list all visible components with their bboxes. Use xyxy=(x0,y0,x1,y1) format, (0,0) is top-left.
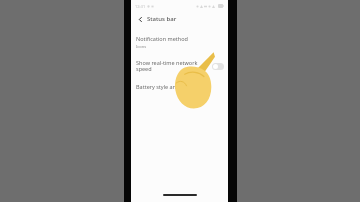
staticText: Notification method xyxy=(136,35,188,42)
staticText: Battery style and percentage xyxy=(136,83,211,90)
staticText: Show real-time network speed xyxy=(136,59,210,73)
button[interactable]: Show real-time network speed xyxy=(131,56,228,76)
staticText: Icons xyxy=(136,44,147,49)
button[interactable]: Back xyxy=(135,14,145,24)
button[interactable]: Battery style and percentage xyxy=(131,80,228,93)
button[interactable]: Notification method xyxy=(131,29,228,53)
button[interactable]: Show real-time network speed toggle xyxy=(212,63,224,70)
staticText: 12:31 xyxy=(135,4,146,9)
staticText: Status bar xyxy=(147,15,177,23)
button[interactable]: Home gesture bar xyxy=(163,194,197,196)
